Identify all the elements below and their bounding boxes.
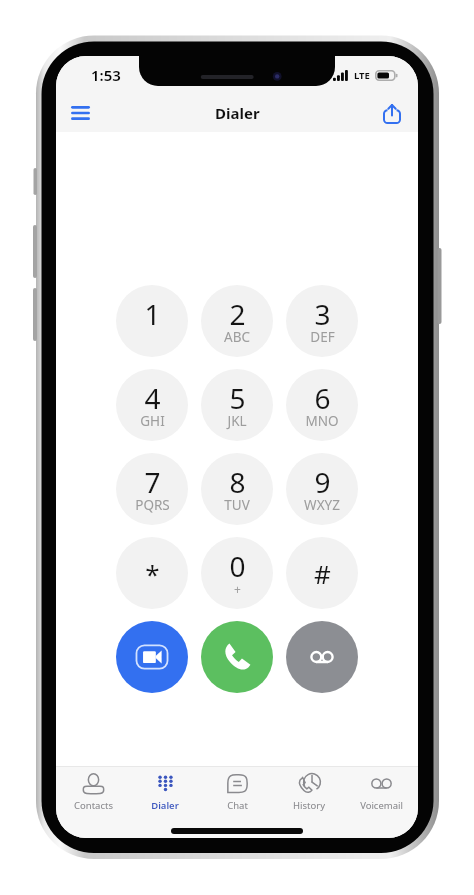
staticText: 1	[144, 295, 161, 333]
button[interactable]: 4	[116, 369, 188, 441]
staticText: 2	[229, 295, 246, 333]
staticText: 8	[229, 463, 246, 501]
button[interactable]: Video call	[116, 621, 188, 693]
staticText: Dialer	[215, 103, 260, 123]
button[interactable]: 8	[201, 453, 273, 525]
staticText: JKL	[227, 412, 247, 430]
button[interactable]: Share	[374, 95, 410, 131]
button[interactable]: Voicemail	[286, 621, 358, 693]
staticText: DEF	[310, 328, 335, 346]
staticText: *	[145, 556, 160, 591]
button[interactable]: Chat	[202, 767, 272, 812]
button[interactable]: Voicemail	[346, 767, 416, 812]
button[interactable]: 6	[286, 369, 358, 441]
button[interactable]: Call	[201, 621, 273, 693]
staticText: #	[314, 556, 331, 591]
staticText: Contacts	[74, 799, 113, 812]
staticText: Chat	[227, 799, 248, 812]
button[interactable]: 1	[116, 285, 188, 357]
staticText: +	[234, 581, 241, 597]
button[interactable]: Dialer	[130, 767, 200, 812]
staticText: TUV	[224, 496, 250, 514]
button[interactable]: 7	[116, 453, 188, 525]
staticText: 9	[314, 463, 331, 501]
button[interactable]: 3	[286, 285, 358, 357]
staticText: GHI	[140, 412, 165, 430]
button[interactable]: 0	[201, 537, 273, 609]
staticText: 7	[144, 463, 161, 501]
staticText: 3	[314, 295, 331, 333]
button[interactable]: 2	[201, 285, 273, 357]
button[interactable]: Contacts	[58, 767, 128, 812]
button[interactable]: 5	[201, 369, 273, 441]
button[interactable]: Menu	[61, 94, 99, 132]
staticText: MNO	[305, 412, 339, 430]
button[interactable]: 9	[286, 453, 358, 525]
staticText: ABC	[224, 328, 250, 346]
staticText: 5	[229, 379, 246, 417]
staticText: WXYZ	[304, 496, 340, 514]
staticText: Dialer	[151, 799, 179, 812]
staticText: Voicemail	[360, 799, 403, 812]
staticText: History	[293, 799, 325, 812]
staticText: 6	[314, 379, 331, 417]
button[interactable]: *	[116, 537, 188, 609]
staticText: PQRS	[135, 496, 170, 514]
staticText: 0	[229, 547, 246, 585]
staticText: 1:53	[91, 65, 121, 85]
button[interactable]: History	[274, 767, 344, 812]
staticText: 4	[144, 379, 161, 417]
staticText: LTE	[354, 69, 370, 82]
button[interactable]: #	[286, 537, 358, 609]
